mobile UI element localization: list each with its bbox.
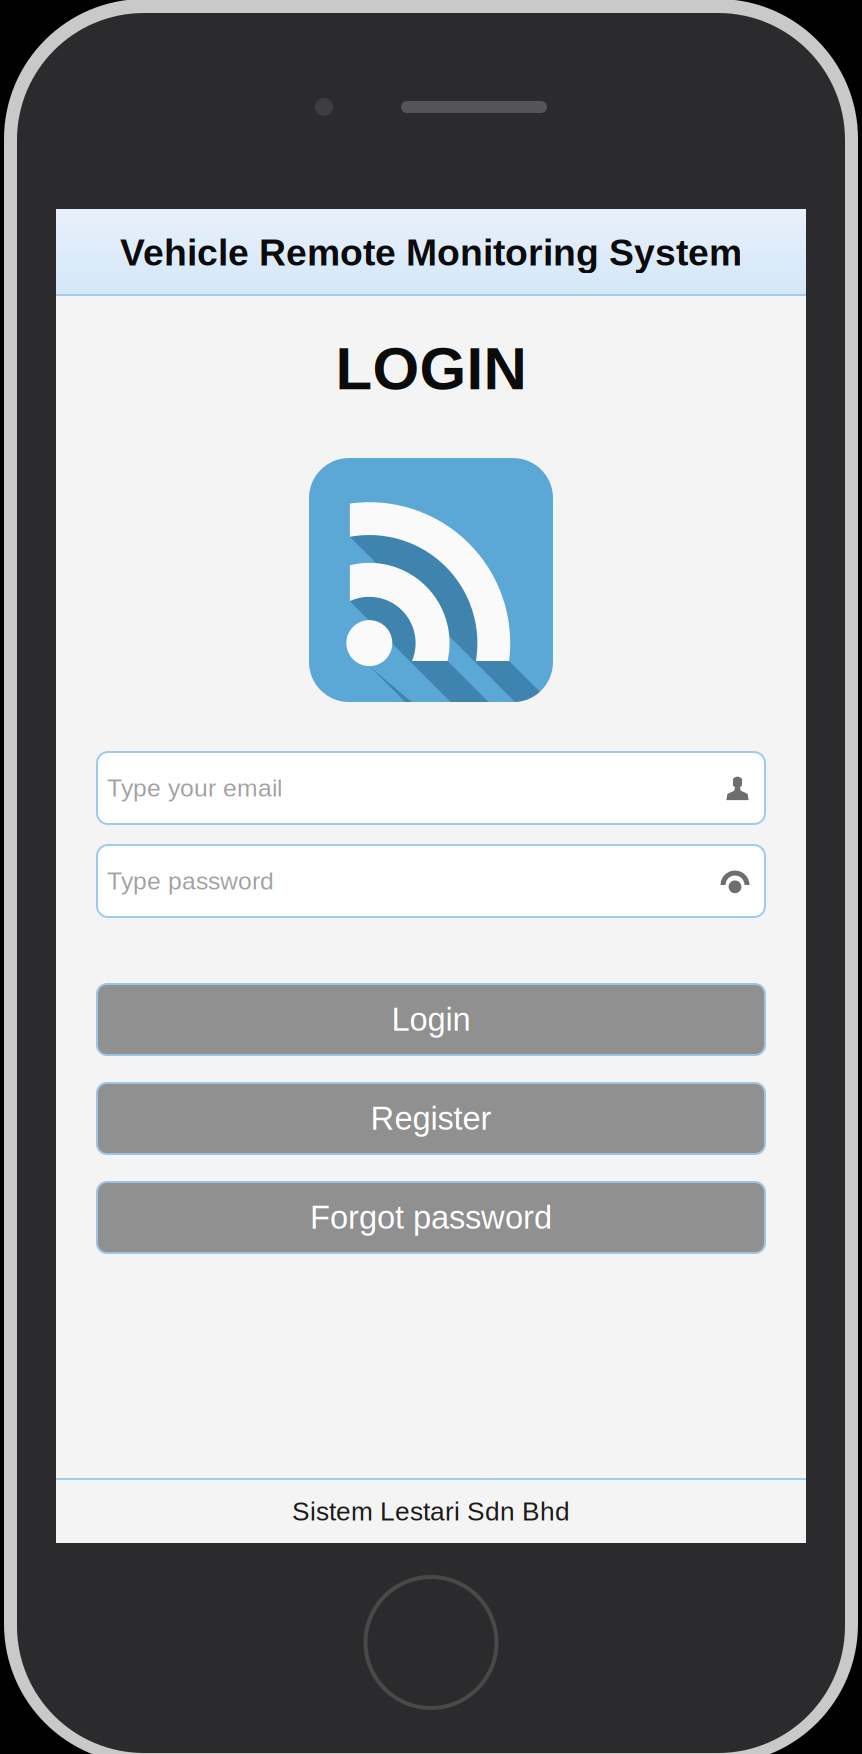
staticText: Register — [370, 1100, 491, 1137]
button[interactable]: Type password — [97, 845, 765, 917]
staticText: Login — [391, 1001, 470, 1038]
button[interactable]: Register — [97, 1083, 765, 1154]
button[interactable]: Login — [97, 984, 765, 1055]
staticText: Forgot password — [310, 1199, 552, 1236]
staticText: Vehicle Remote Monitoring System — [120, 232, 742, 273]
staticText: LOGIN — [335, 335, 526, 402]
staticText: Type password — [107, 867, 274, 895]
staticText: Sistem Lestari Sdn Bhd — [292, 1497, 570, 1526]
button[interactable]: Type your email — [97, 752, 765, 824]
staticText: Type your email — [107, 774, 282, 802]
button[interactable]: Forgot password — [97, 1182, 765, 1253]
